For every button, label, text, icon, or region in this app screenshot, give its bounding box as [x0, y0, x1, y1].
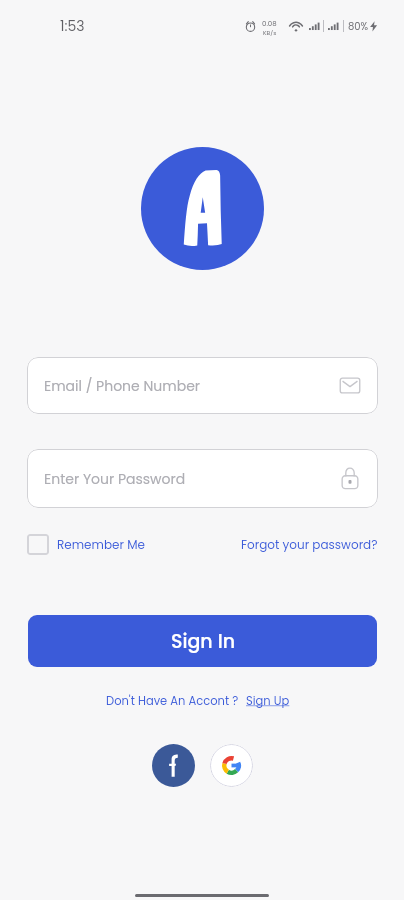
button[interactable]: Sign In — [28, 615, 377, 667]
button[interactable]: Email / Phone Number — [27, 357, 378, 414]
button[interactable]: Sign in with Facebook — [152, 744, 195, 787]
staticText: KB/s — [263, 29, 277, 37]
staticText: Forgot your password? — [241, 536, 378, 553]
staticText: Email / Phone Number — [44, 376, 201, 396]
staticText: 1:53 — [60, 16, 85, 36]
button[interactable]: Remember Me — [27, 534, 145, 555]
staticText: 0.08 — [262, 19, 277, 29]
staticText: Remember Me — [57, 536, 145, 553]
staticText: Sign In — [171, 628, 235, 655]
button[interactable]: Enter Your Password — [27, 449, 378, 508]
button[interactable]: Sign in with Google — [210, 744, 253, 787]
button[interactable]: Forgot your password? — [241, 536, 378, 553]
staticText: Sign Up — [246, 693, 290, 709]
staticText: Enter Your Password — [44, 469, 186, 489]
staticText: Don't Have An Accont ? — [106, 693, 239, 709]
button[interactable]: Sign Up — [246, 693, 290, 709]
staticText: 80% — [348, 19, 369, 33]
